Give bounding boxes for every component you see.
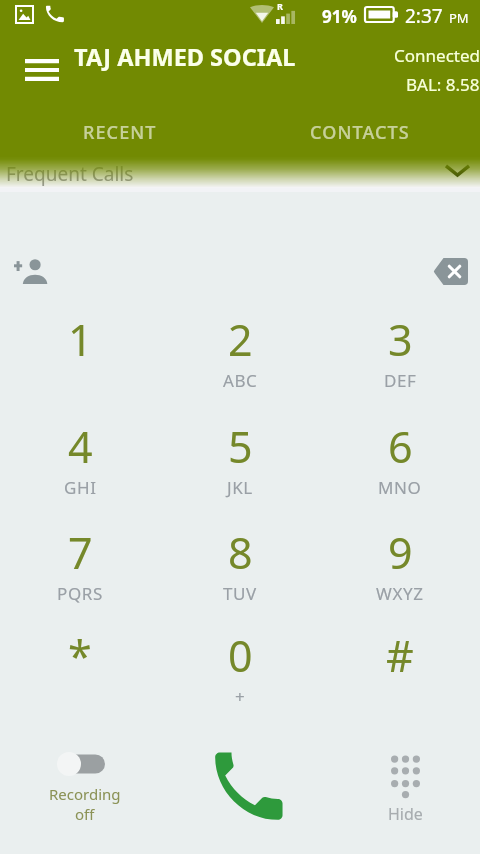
button[interactable]: 5 — [180, 417, 300, 517]
staticText: DEF — [384, 369, 417, 392]
staticText: ABC — [223, 369, 258, 392]
button[interactable]: Menu — [17, 45, 66, 94]
staticText: 8 — [228, 523, 253, 582]
button[interactable]: Backspace — [423, 244, 477, 298]
staticText: MNO — [378, 476, 422, 499]
button[interactable]: 6 — [340, 417, 460, 517]
staticText: Hide — [388, 803, 423, 825]
staticText: PQRS — [57, 582, 103, 605]
staticText: 2:37 — [405, 3, 443, 29]
button[interactable]: 3 — [340, 310, 460, 410]
button[interactable]: 2 — [180, 310, 300, 410]
staticText: JKL — [227, 476, 253, 499]
staticText: GHI — [64, 476, 97, 499]
button[interactable]: 1 — [20, 310, 140, 410]
staticText: R — [277, 0, 283, 12]
staticText: Recording — [49, 784, 121, 804]
button[interactable]: Recording — [21, 747, 141, 839]
button[interactable]: Add contact — [4, 244, 58, 298]
staticText: 4 — [68, 417, 93, 476]
staticText: 1 — [68, 310, 93, 369]
button[interactable]: 7 — [20, 523, 140, 623]
staticText: TAJ AHMED SOCIAL — [74, 41, 296, 73]
staticText: PM — [449, 9, 469, 27]
staticText: * — [68, 626, 92, 685]
staticText: WXYZ — [376, 582, 424, 605]
button[interactable]: 4 — [20, 417, 140, 517]
staticText: RECENT — [83, 120, 157, 145]
button[interactable]: CONTACTS — [240, 107, 480, 157]
button[interactable]: # — [340, 626, 460, 726]
staticText: 0 — [228, 626, 253, 685]
staticText: off — [75, 804, 95, 824]
staticText: BAL: 8.58 — [406, 73, 480, 96]
button[interactable]: 9 — [340, 523, 460, 623]
staticText: 3 — [388, 310, 413, 369]
staticText: 9 — [388, 523, 413, 582]
button[interactable]: Call — [189, 740, 291, 836]
staticText: Frequent Calls — [6, 161, 134, 187]
staticText: 7 — [68, 523, 93, 582]
staticText: 5 — [228, 417, 253, 476]
button[interactable]: RECENT — [0, 107, 240, 157]
staticText: # — [386, 626, 414, 685]
staticText: 6 — [388, 417, 413, 476]
staticText: + — [235, 685, 246, 708]
button[interactable]: 8 — [180, 523, 300, 623]
staticText: CONTACTS — [310, 120, 410, 145]
button[interactable]: 0 — [180, 626, 300, 726]
staticText: Connected — [394, 44, 480, 67]
staticText: 91% — [322, 5, 357, 28]
button[interactable]: * — [20, 626, 140, 726]
staticText: 2 — [228, 310, 253, 369]
staticText: TUV — [223, 582, 257, 605]
button[interactable]: Hide — [355, 748, 455, 840]
